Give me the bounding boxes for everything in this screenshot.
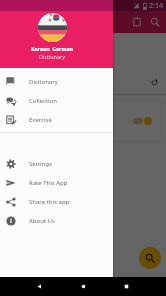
staticText: Rate This App bbox=[29, 179, 68, 187]
staticText: Settings bbox=[29, 160, 52, 168]
button[interactable]: Clipboard bbox=[128, 13, 146, 31]
button[interactable]: Dictionary bbox=[0, 72, 113, 91]
staticText: Korean German bbox=[31, 45, 73, 52]
staticText: Exercise bbox=[29, 116, 52, 124]
button[interactable]: Search bbox=[139, 247, 161, 269]
staticText: Collection bbox=[29, 97, 57, 105]
staticText: 2:14 bbox=[149, 1, 163, 11]
button[interactable]: Search bbox=[146, 13, 164, 31]
button[interactable]: Collection bbox=[0, 91, 113, 110]
staticText: About Us bbox=[29, 217, 55, 225]
button[interactable]: Exercise bbox=[0, 110, 113, 129]
staticText: Dictionary bbox=[29, 78, 58, 86]
button[interactable]: Rate This App bbox=[0, 173, 113, 192]
button[interactable]: Share this app bbox=[0, 192, 113, 211]
staticText: Dictionary bbox=[39, 53, 65, 60]
button[interactable]: Settings bbox=[0, 154, 113, 173]
staticText: Share this app bbox=[29, 198, 70, 206]
button[interactable]: About Us bbox=[0, 211, 113, 230]
